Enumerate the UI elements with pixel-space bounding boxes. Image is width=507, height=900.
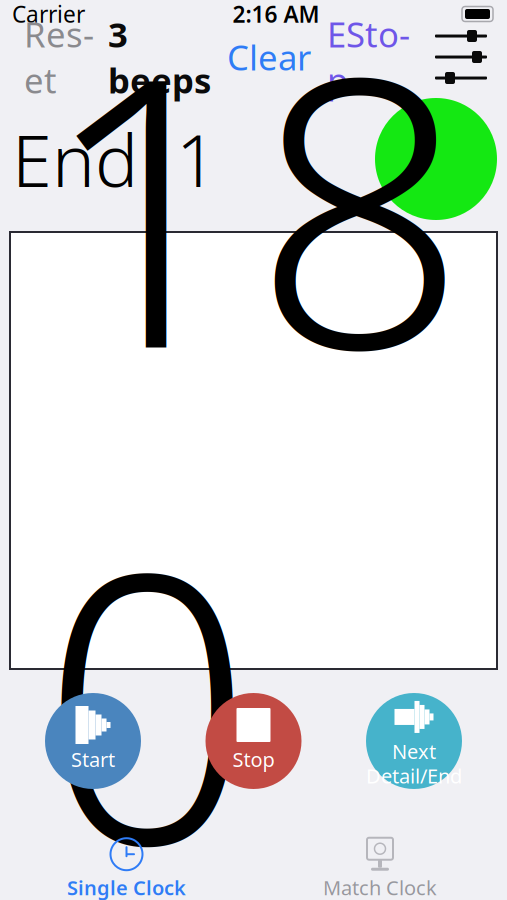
staticText: 180 (40, 0, 466, 900)
button[interactable]: Clear (219, 28, 319, 86)
button[interactable]: Single Clock (0, 838, 253, 900)
staticText: 3 beeps (108, 11, 211, 103)
staticText: Match Clock (323, 874, 437, 900)
button[interactable]: Match Clock (253, 838, 507, 900)
button[interactable]: Start (45, 693, 141, 789)
staticText: Stop (232, 746, 274, 773)
staticText: Single Clock (67, 874, 186, 900)
button[interactable]: 3 beeps (100, 5, 219, 109)
staticText: Carrier (12, 0, 85, 29)
staticText: Reset (24, 11, 94, 103)
button[interactable]: Next (366, 693, 462, 789)
button[interactable]: EStop (319, 5, 418, 109)
staticText: 2:16 AM (232, 0, 319, 29)
staticText: Start (71, 746, 115, 773)
staticText: Clear (227, 34, 311, 80)
staticText: EStop (327, 11, 410, 103)
button[interactable]: Reset (18, 5, 100, 109)
button[interactable]: Stop (205, 693, 301, 789)
staticText: End 1 (12, 111, 217, 207)
button[interactable]: Settings (433, 34, 489, 80)
staticText: Next (392, 738, 436, 764)
staticText: Detail/End (366, 762, 462, 789)
